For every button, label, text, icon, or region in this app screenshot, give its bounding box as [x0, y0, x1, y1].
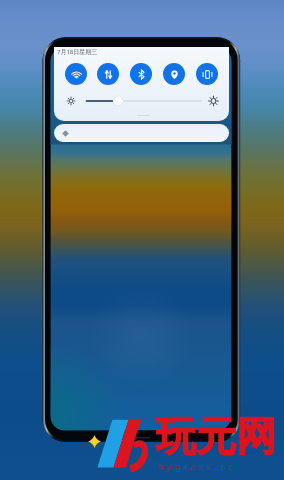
staticText: 玩元网: [156, 411, 276, 461]
button[interactable]: Mobile data: [97, 63, 119, 85]
button[interactable]: Vibrate: [196, 63, 218, 85]
button[interactable]: Media controls: [54, 124, 229, 142]
button[interactable]: Wi-Fi: [65, 63, 87, 85]
staticText: 7月18日星期三: [57, 48, 98, 56]
button[interactable]: Location: [163, 63, 185, 85]
button[interactable]: Bluetooth: [130, 63, 152, 85]
staticText: h y g l a s s . c c: [158, 460, 234, 472]
